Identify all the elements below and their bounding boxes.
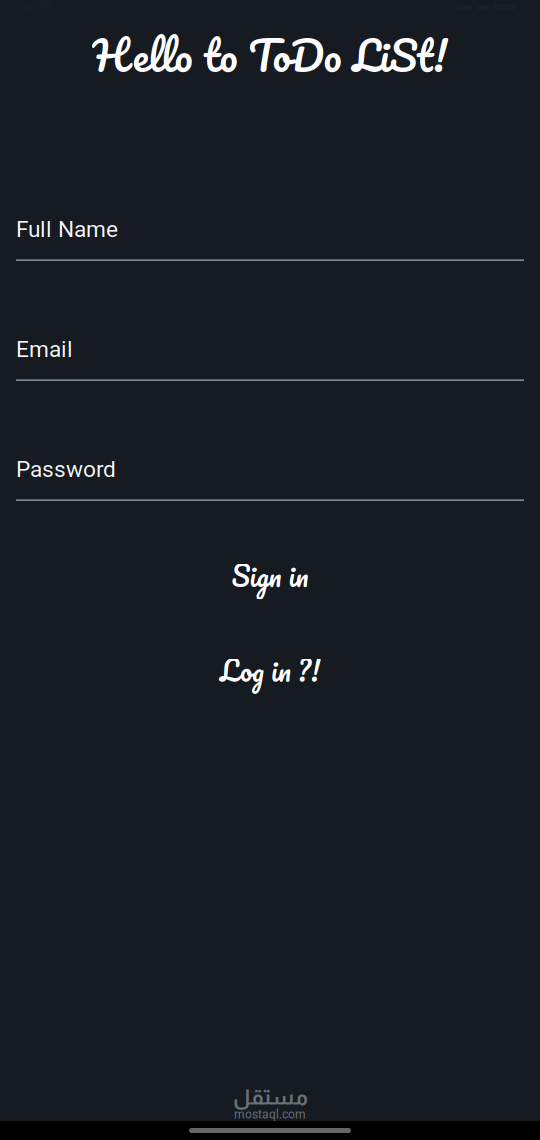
staticText: mostaql.com: [234, 1107, 306, 1122]
staticText: Email: [16, 336, 73, 363]
staticText: Sign in: [231, 552, 308, 599]
staticText: Password: [16, 456, 116, 483]
staticText: Hello to ToDo LiSt!: [92, 20, 447, 90]
button[interactable]: Sign in: [0, 552, 540, 599]
staticText: Log in ?!: [220, 647, 320, 694]
staticText: مستقل: [232, 1085, 307, 1109]
staticText: Full Name: [16, 216, 118, 243]
button[interactable]: Log in ?!: [0, 647, 540, 694]
